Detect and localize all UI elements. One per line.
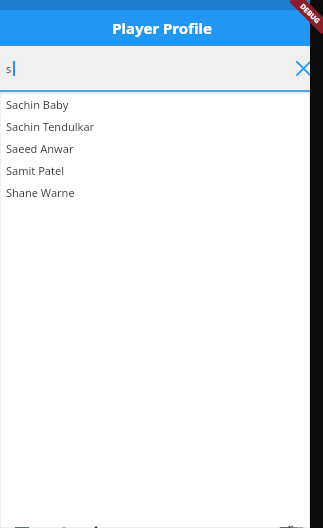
- staticText: Saeed Anwar: [6, 141, 74, 156]
- button[interactable]: Shane Warne: [0, 181, 310, 203]
- staticText: DEBUG: [298, 2, 322, 26]
- button[interactable]: Clear search: [289, 54, 317, 82]
- staticText: Sachin Baby: [6, 97, 69, 112]
- staticText: Shane Warne: [6, 185, 75, 200]
- staticText: Player Profile: [112, 18, 212, 38]
- button[interactable]: Samit Patel: [0, 159, 310, 181]
- staticText: s: [6, 61, 12, 76]
- button[interactable]: Saeed Anwar: [0, 137, 310, 159]
- staticText: Samit Patel: [6, 163, 65, 178]
- button[interactable]: Sachin Tendulkar: [0, 115, 310, 137]
- button[interactable]: Sachin Baby: [0, 93, 310, 115]
- staticText: Sachin Tendulkar: [6, 119, 95, 134]
